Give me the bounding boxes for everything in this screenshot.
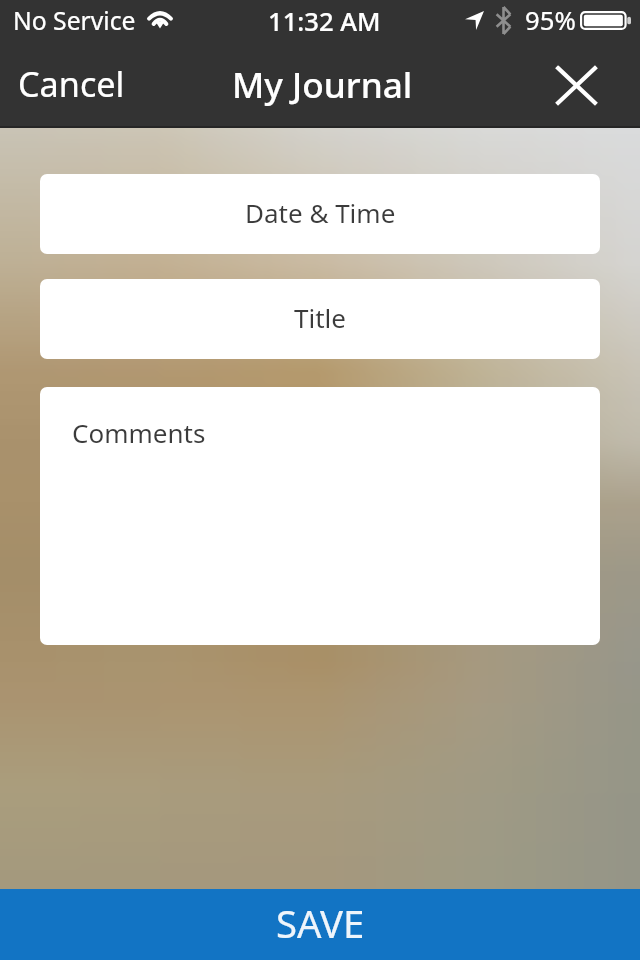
staticText: Comments (72, 415, 206, 450)
staticText: SAVE (276, 897, 365, 949)
button[interactable]: Title (40, 279, 600, 359)
button[interactable]: SAVE (0, 889, 640, 960)
staticText: Date & Time (245, 195, 396, 230)
button[interactable]: Comments (40, 387, 600, 645)
staticText: Title (294, 300, 346, 335)
button[interactable]: Close (552, 63, 600, 111)
staticText: 11:32 AM (268, 4, 381, 39)
button[interactable]: Date & Time (40, 174, 600, 254)
staticText: 95% (525, 3, 576, 38)
staticText: No Service (13, 4, 136, 38)
staticText: My Journal (232, 60, 413, 108)
button[interactable]: Cancel (18, 60, 125, 107)
staticText: Cancel (18, 60, 125, 107)
